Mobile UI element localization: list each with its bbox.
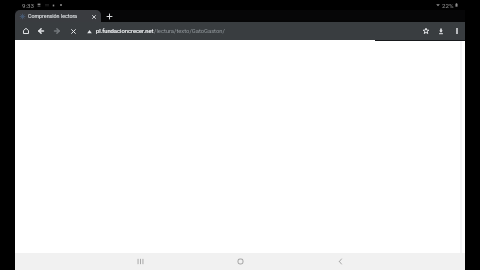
staticText: pl.fundacioncrecer.net (96, 28, 154, 35)
button[interactable]: More options (449, 22, 465, 40)
button[interactable]: Back (323, 253, 357, 270)
staticText: Comprensión lectora (28, 13, 88, 19)
staticText: 9:33 (22, 2, 34, 9)
button[interactable]: Home (223, 253, 257, 270)
button[interactable]: Close tab (90, 13, 97, 20)
staticText: 22% (442, 2, 454, 9)
button[interactable]: Comprensión lectora (15, 10, 101, 22)
button[interactable]: Forward (49, 22, 65, 40)
button[interactable]: Home (18, 22, 33, 40)
button[interactable]: New tab (101, 10, 117, 22)
button[interactable]: Back (33, 22, 49, 40)
button[interactable]: Stop loading (65, 22, 82, 40)
button[interactable]: Downloads (433, 22, 449, 40)
staticText: /lectura/texto/GatoGaston/ (154, 28, 225, 35)
button[interactable]: Bookmark (419, 22, 433, 40)
button[interactable]: Recent apps (123, 253, 157, 270)
